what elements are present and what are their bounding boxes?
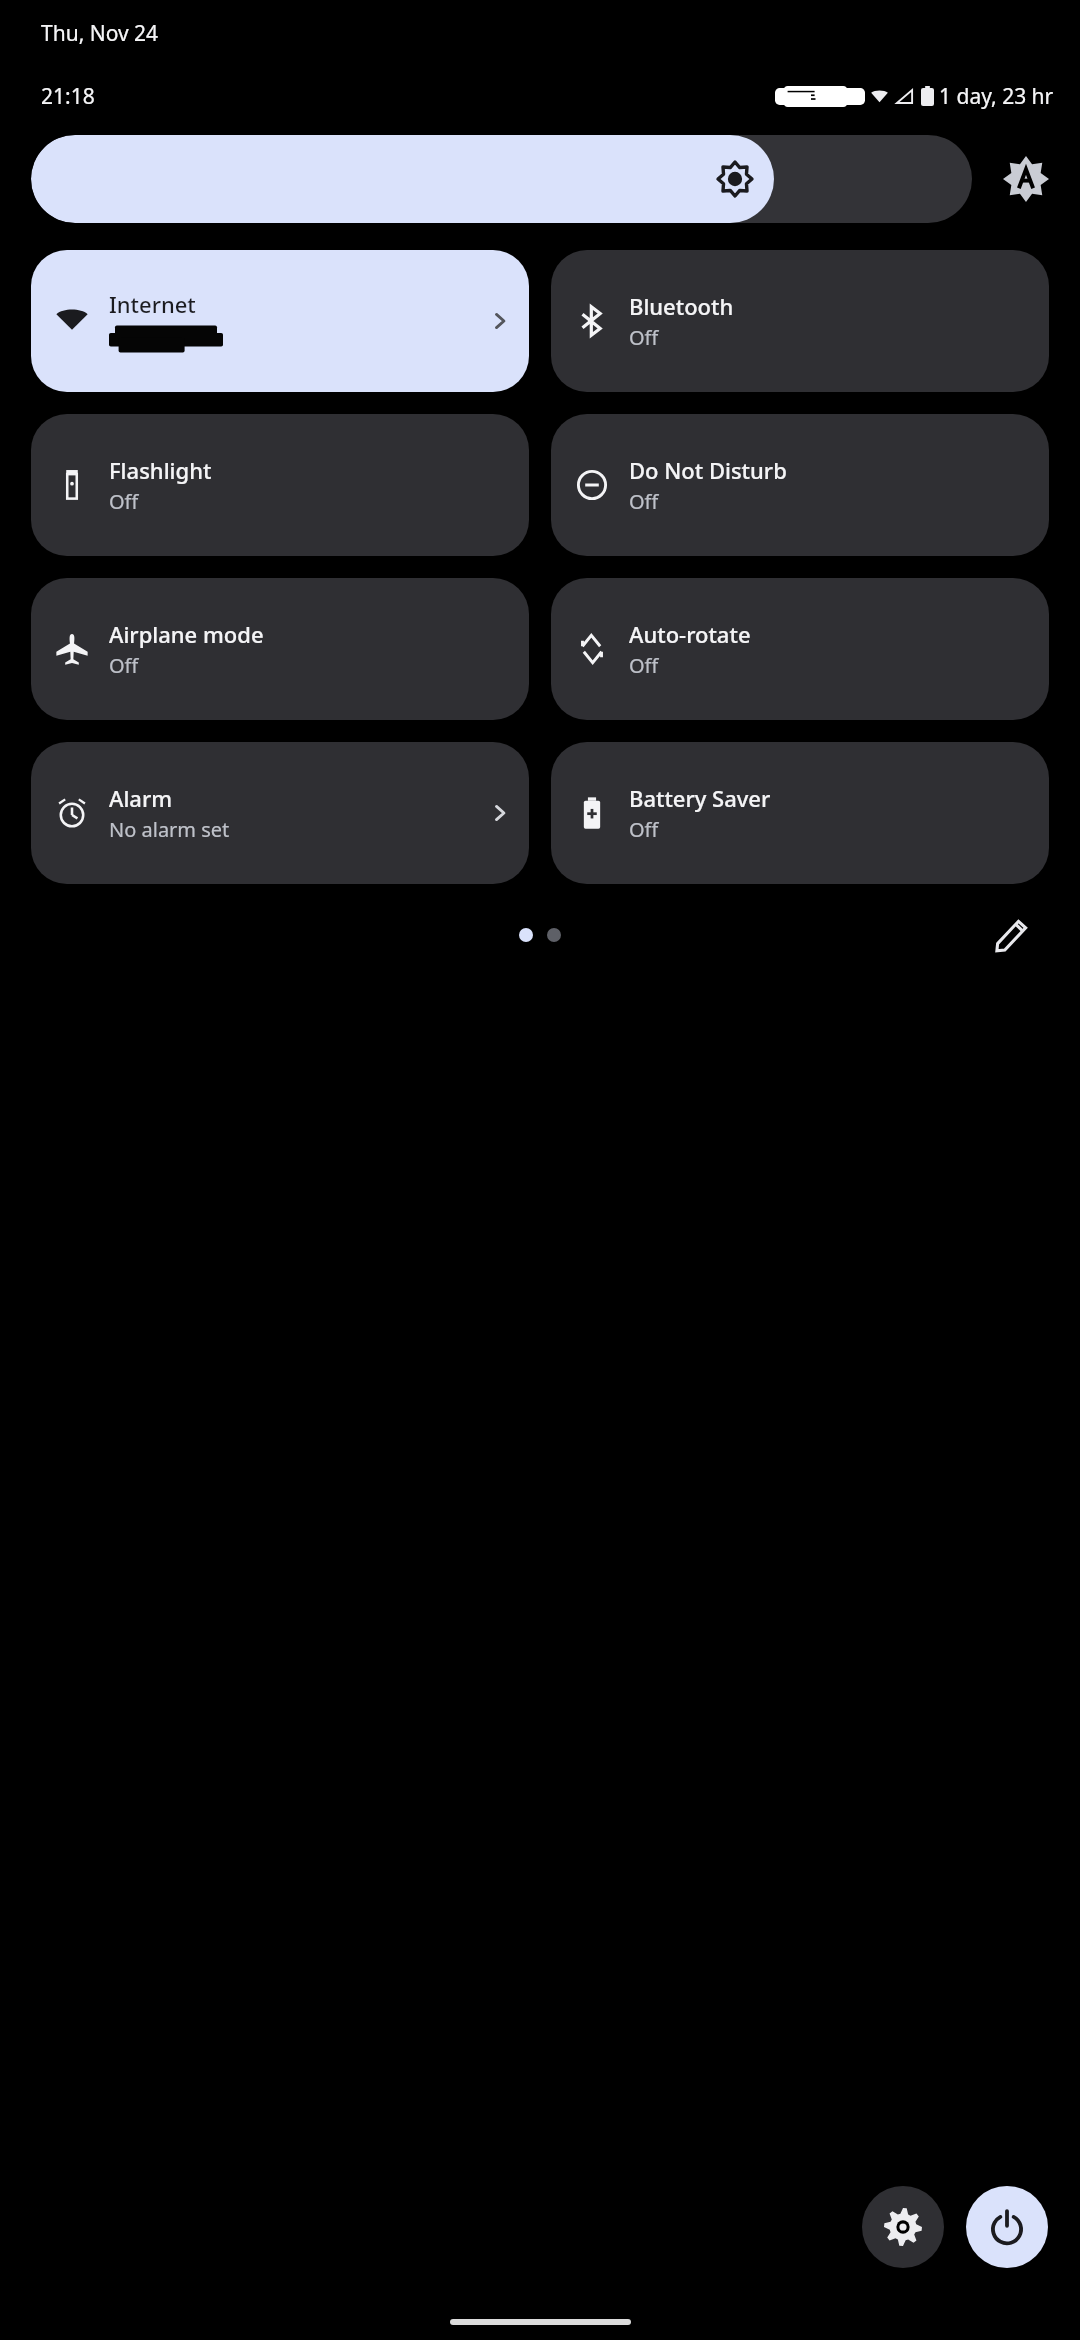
button[interactable]: Airplane mode <box>31 578 529 720</box>
staticText: Off <box>109 488 139 515</box>
staticText: Thu, Nov 24 <box>41 19 159 48</box>
button[interactable]: Edit tiles <box>988 911 1036 959</box>
button[interactable]: Flashlight <box>31 414 529 556</box>
staticText: Flashlight <box>109 455 212 485</box>
button[interactable]: Alarm <box>31 742 529 884</box>
staticText: Airplane mode <box>109 619 264 649</box>
staticText: Off <box>629 324 659 351</box>
button[interactable]: Auto-rotate <box>551 578 1049 720</box>
staticText: Auto-rotate <box>629 619 751 649</box>
button[interactable]: Settings <box>862 2186 944 2268</box>
staticText: Off <box>629 816 659 843</box>
staticText: Do Not Disturb <box>629 455 787 485</box>
staticText: 1 day, 23 hr <box>939 82 1054 111</box>
button[interactable]: Brightness <box>31 135 972 223</box>
button[interactable]: Internet <box>31 250 529 392</box>
button[interactable]: Battery Saver <box>551 742 1049 884</box>
staticText: Off <box>629 652 659 679</box>
button[interactable]: Power <box>966 2186 1048 2268</box>
staticText: 21:18 <box>41 82 95 111</box>
staticText: No alarm set <box>109 816 230 843</box>
button[interactable]: Bluetooth <box>551 250 1049 392</box>
button[interactable]: Auto brightness <box>998 151 1054 207</box>
staticText: Internet <box>109 289 196 319</box>
staticText: Bluetooth <box>629 291 734 321</box>
staticText: Off <box>629 488 659 515</box>
staticText: Battery Saver <box>629 783 771 813</box>
staticText: Off <box>109 652 139 679</box>
staticText: Alarm <box>109 783 173 813</box>
button[interactable]: Do Not Disturb <box>551 414 1049 556</box>
